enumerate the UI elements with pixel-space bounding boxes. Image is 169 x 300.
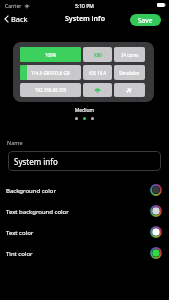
button[interactable]: Back (0, 12, 34, 26)
button[interactable]: System info (8, 151, 161, 171)
staticText: Back (11, 14, 28, 24)
button[interactable]: Text color (0, 222, 169, 243)
button[interactable]: 192.168.68.105 (20, 83, 81, 97)
staticText: Carrier (5, 3, 22, 10)
staticText: Simulator (119, 70, 140, 76)
staticText: 5:10 PM (75, 3, 94, 10)
staticText: Tint color (6, 250, 33, 258)
staticText: Background color (6, 187, 56, 195)
button[interactable]: X86 (83, 47, 112, 62)
button[interactable]: Background color (0, 180, 169, 201)
button[interactable]: Save (130, 14, 161, 26)
staticText: Text color (6, 229, 34, 237)
staticText: iOS 18.4 (89, 70, 106, 76)
staticText: System info (14, 156, 58, 167)
button[interactable]: 114.0 GB/913.6 GB (20, 65, 81, 80)
button[interactable]: 24 cores (114, 47, 145, 62)
button[interactable]: Airplane mode (114, 83, 145, 97)
staticText: 114.0 GB/913.6 GB (31, 70, 70, 76)
staticText: Medium (0, 107, 169, 114)
staticText: Name (7, 139, 23, 146)
button[interactable]: 100% (20, 47, 81, 62)
button[interactable]: Wi-Fi (83, 83, 112, 97)
button[interactable]: iOS 18.4 (83, 65, 112, 80)
button[interactable]: Simulator (114, 65, 145, 80)
button[interactable]: Tint color (0, 243, 169, 264)
other: Wi-Fi (94, 87, 101, 93)
staticText: X86 (94, 52, 102, 58)
staticText: Save (138, 16, 153, 25)
staticText: 100% (45, 52, 57, 58)
staticText: 24 cores (121, 52, 139, 58)
button[interactable]: Text background color (0, 201, 169, 222)
staticText: 192.168.68.105 (35, 87, 67, 93)
other: Airplane mode (125, 86, 134, 94)
staticText: System info (65, 14, 105, 24)
staticText: Text background color (6, 208, 69, 216)
